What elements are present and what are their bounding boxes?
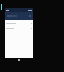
button[interactable] xyxy=(5,26,33,31)
button[interactable] xyxy=(5,21,33,26)
button[interactable]: More options xyxy=(28,14,32,18)
button[interactable]: Navigation menu xyxy=(6,14,10,18)
